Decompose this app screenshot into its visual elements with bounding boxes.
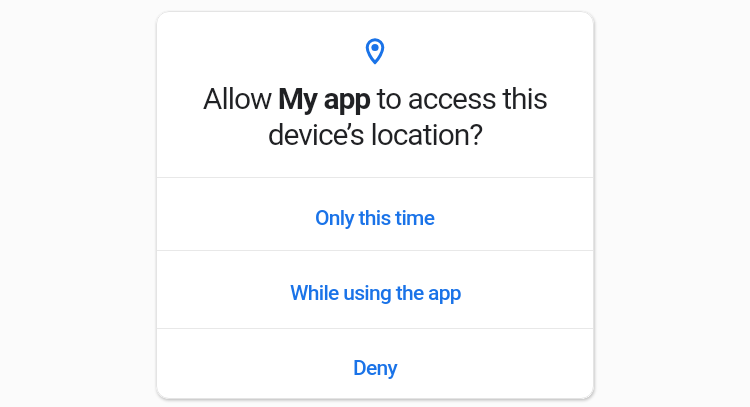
- staticText: Allow My app to access this device’s loc…: [156, 81, 594, 152]
- staticText: Deny: [353, 356, 398, 381]
- staticText: Only this time: [315, 206, 435, 231]
- button[interactable]: Only this time: [156, 178, 594, 250]
- button[interactable]: Deny: [156, 329, 594, 399]
- button[interactable]: While using the app: [156, 251, 594, 328]
- staticText: While using the app: [290, 281, 461, 306]
